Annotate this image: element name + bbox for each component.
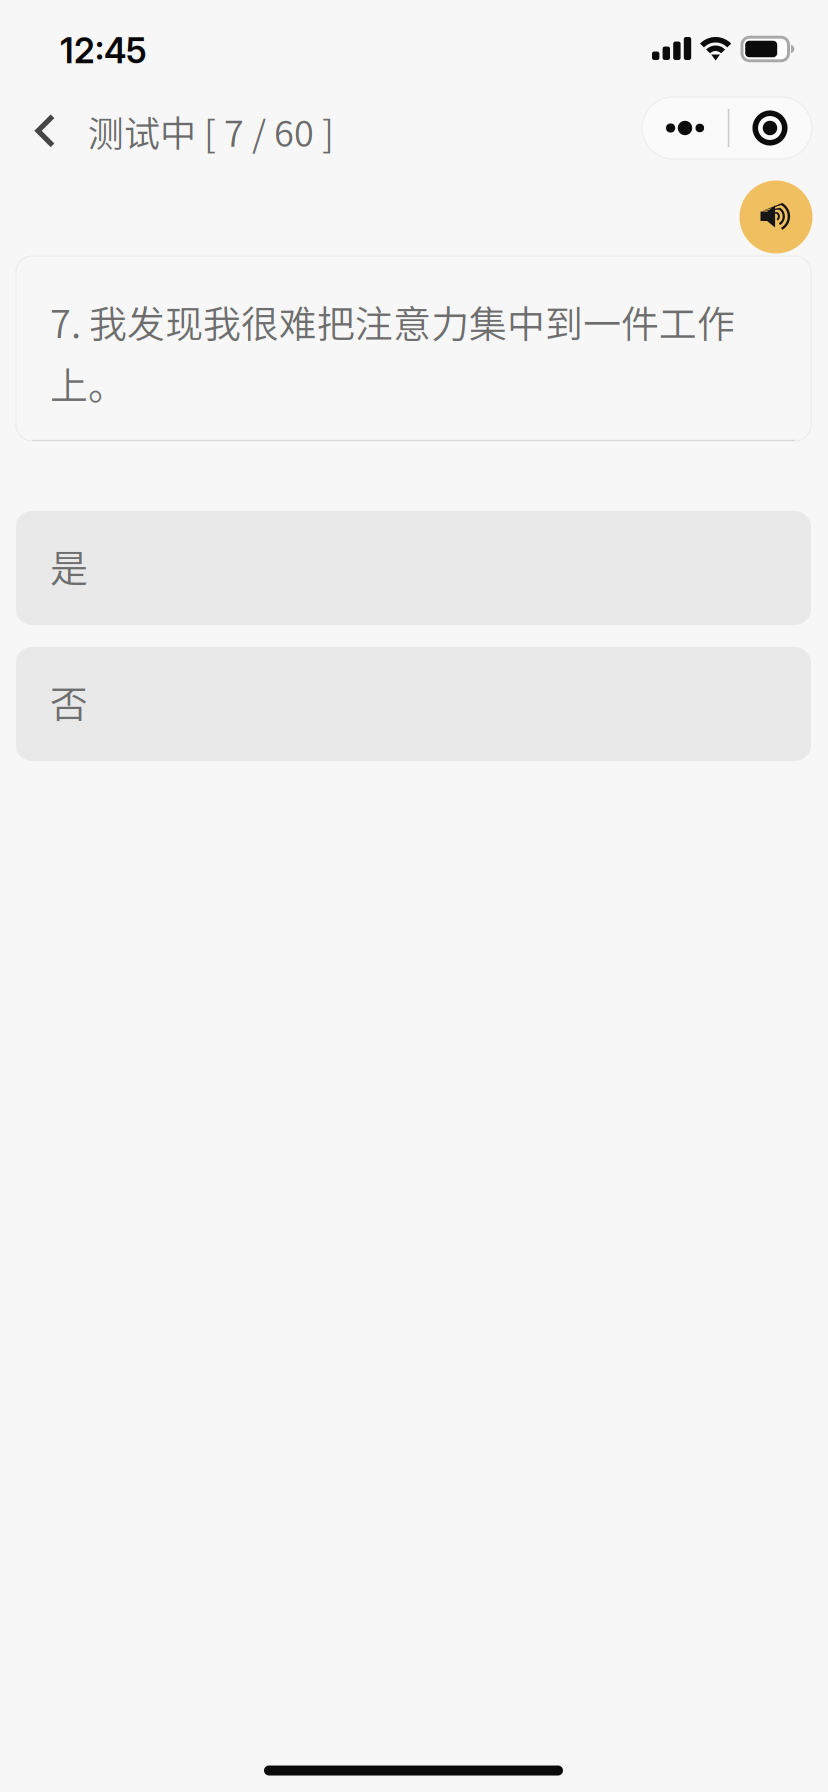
staticText: 否 <box>50 674 88 729</box>
button[interactable]: More <box>642 97 728 159</box>
button[interactable]: Close mini program <box>728 97 812 159</box>
staticText: 是 <box>50 538 88 593</box>
staticText: 7. 我发现我很难把注意力集中到一件工作上。 <box>50 294 735 411</box>
button[interactable]: 是 <box>16 511 811 625</box>
button[interactable]: Back <box>14 92 80 164</box>
button[interactable]: Play question audio <box>739 180 812 253</box>
staticText: 测试中 [ 7 / 60 ] <box>88 105 334 157</box>
button[interactable]: 否 <box>16 647 811 761</box>
staticText: 12:45 <box>60 30 147 72</box>
